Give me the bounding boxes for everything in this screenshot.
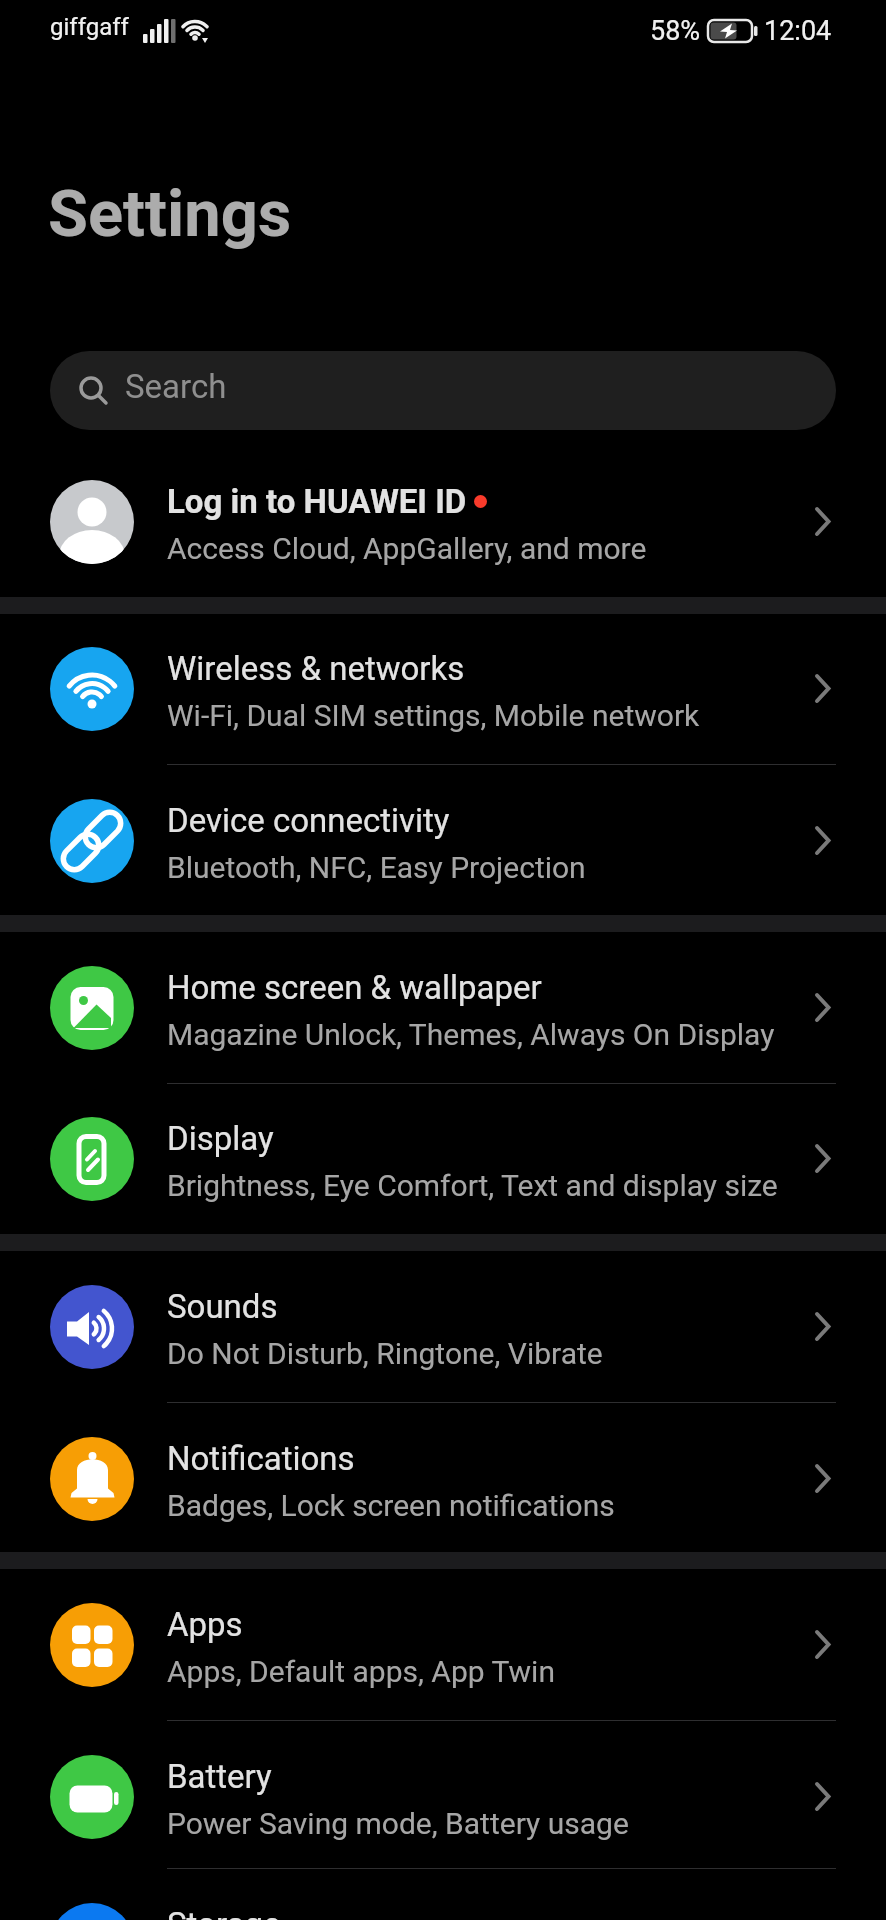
button[interactable]: Storage: [0, 1869, 886, 1920]
button[interactable]: Sounds: [0, 1251, 886, 1402]
staticText: Magazine Unlock, Themes, Always On Displ…: [167, 1017, 775, 1052]
staticText: Search: [125, 367, 227, 406]
button[interactable]: Notifications: [0, 1403, 886, 1554]
staticText: Power Saving mode, Battery usage: [167, 1806, 629, 1841]
staticText: Do Not Disturb, Ringtone, Vibrate: [167, 1336, 603, 1371]
staticText: 58%: [650, 15, 701, 47]
staticText: Bluetooth, NFC, Easy Projection: [167, 850, 586, 885]
staticText: Access Cloud, AppGallery, and more: [167, 531, 647, 566]
staticText: Wireless & networks: [167, 649, 465, 688]
staticText: Display: [167, 1119, 274, 1158]
staticText: Battery: [167, 1757, 272, 1796]
button[interactable]: Battery: [0, 1721, 886, 1872]
staticText: Apps: [167, 1605, 243, 1644]
staticText: Home screen & wallpaper: [167, 968, 542, 1007]
button[interactable]: Wireless & networks: [0, 613, 886, 764]
staticText: Settings: [48, 176, 292, 252]
staticText: Log in to HUAWEI ID: [167, 482, 467, 521]
button[interactable]: Display: [0, 1083, 886, 1234]
staticText: giffgaff: [50, 13, 129, 41]
staticText: Sounds: [167, 1287, 278, 1326]
staticText: Storage: [167, 1905, 281, 1920]
button[interactable]: Device connectivity: [0, 765, 886, 916]
button[interactable]: Home screen & wallpaper: [0, 932, 886, 1083]
button[interactable]: Search: [50, 351, 836, 430]
staticText: Apps, Default apps, App Twin: [167, 1654, 555, 1689]
staticText: Notifications: [167, 1439, 355, 1478]
staticText: Badges, Lock screen notifications: [167, 1488, 615, 1523]
staticText: 12:04: [764, 15, 832, 47]
staticText: Device connectivity: [167, 801, 450, 840]
button[interactable]: Apps: [0, 1569, 886, 1720]
staticText: Brightness, Eye Comfort, Text and displa…: [167, 1168, 778, 1203]
button[interactable]: Log in to HUAWEI ID: [0, 446, 886, 597]
staticText: Wi-Fi, Dual SIM settings, Mobile network: [167, 698, 700, 733]
